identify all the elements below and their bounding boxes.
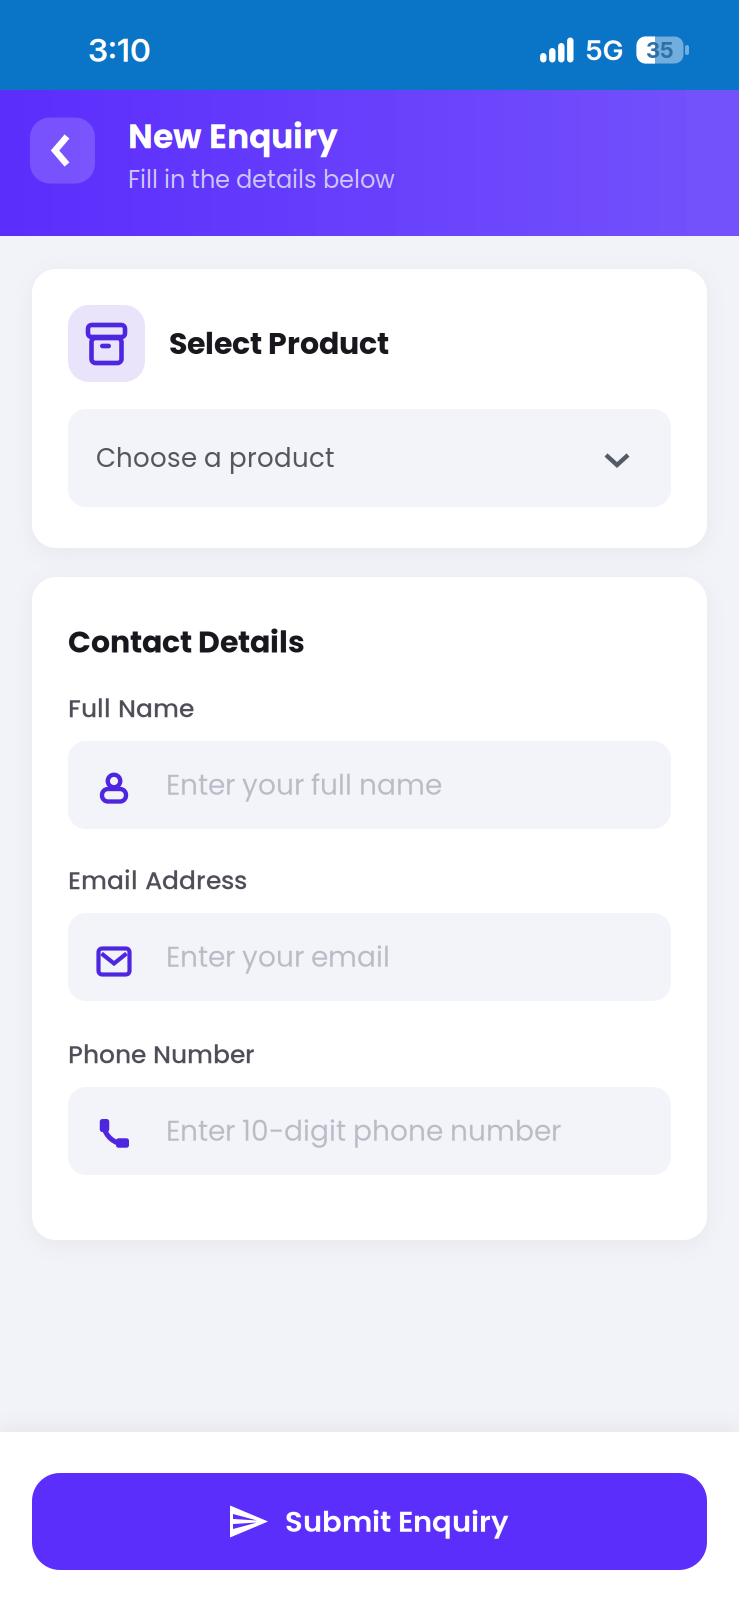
staticText: Enter your full name <box>166 765 442 805</box>
staticText: Enter 10-digit phone number <box>166 1111 561 1151</box>
staticText: 5G <box>585 33 623 67</box>
staticText: Contact Details <box>68 621 305 663</box>
button[interactable]: Back <box>30 117 95 183</box>
staticText: Full Name <box>68 691 194 726</box>
staticText: 3:10 <box>88 31 151 69</box>
button[interactable]: Enter 10-digit phone number <box>68 1087 671 1175</box>
staticText: New Enquiry <box>128 114 338 160</box>
button[interactable]: Choose a product <box>68 409 671 507</box>
staticText: Submit Enquiry <box>285 1501 509 1542</box>
staticText: Phone Number <box>68 1037 255 1072</box>
button[interactable]: Enter your email <box>68 913 671 1001</box>
staticText: Enter your email <box>166 937 390 977</box>
staticText: Choose a product <box>96 440 334 476</box>
button[interactable]: Enter your full name <box>68 741 671 829</box>
staticText: Fill in the details below <box>128 163 395 196</box>
staticText: Email Address <box>68 863 247 898</box>
button[interactable]: Submit Enquiry <box>32 1473 707 1570</box>
staticText: Select Product <box>169 322 389 364</box>
staticText: 35 <box>646 37 674 63</box>
